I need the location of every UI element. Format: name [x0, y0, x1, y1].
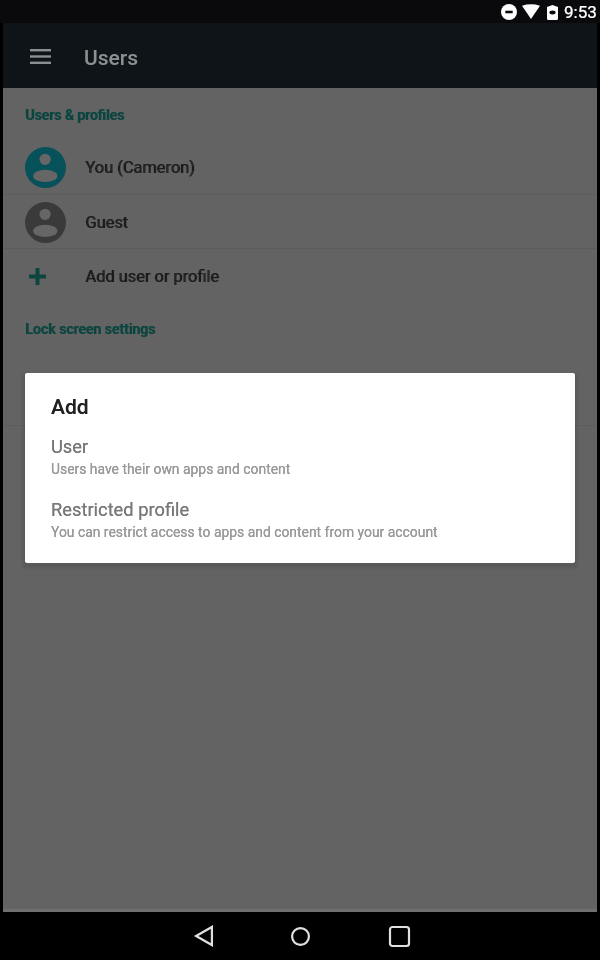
staticText: Lock screen settings: [26, 321, 156, 337]
button[interactable]: Restricted profile: [25, 499, 575, 540]
button[interactable]: Back: [156, 912, 252, 960]
staticText: You (Cameron): [86, 158, 196, 177]
staticText: 9:53: [564, 2, 597, 22]
staticText: You can restrict access to apps and cont…: [51, 524, 438, 540]
staticText: Lock screen settings: [25, 321, 155, 337]
button[interactable]: Add user or profile: [3, 249, 597, 303]
button[interactable]: You (Cameron): [3, 140, 597, 194]
staticText: User: [51, 436, 89, 457]
staticText: Users & profiles: [26, 107, 125, 123]
staticText: Restricted profile: [51, 499, 190, 520]
staticText: You (Cameron): [85, 158, 195, 177]
staticText: Users & profiles: [25, 107, 124, 123]
button[interactable]: Recent apps: [348, 912, 444, 960]
button[interactable]: User: [25, 436, 575, 477]
staticText: Users: [84, 46, 139, 71]
button[interactable]: Home: [252, 912, 348, 960]
staticText: Users have their own apps and content: [51, 461, 291, 477]
staticText: Guest: [86, 213, 129, 232]
staticText: Add user or profile: [86, 267, 220, 286]
staticText: User: [51, 436, 89, 457]
staticText: Users have their own apps and content: [51, 461, 291, 477]
staticText: Restricted profile: [51, 499, 190, 520]
button[interactable]: Open navigation menu: [17, 33, 63, 79]
staticText: Add: [51, 395, 89, 420]
staticText: Guest: [85, 213, 128, 232]
staticText: You can restrict access to apps and cont…: [51, 524, 438, 540]
button[interactable]: Guest: [3, 195, 597, 249]
staticText: Add: [51, 395, 89, 420]
staticText: Add user or profile: [85, 267, 219, 286]
